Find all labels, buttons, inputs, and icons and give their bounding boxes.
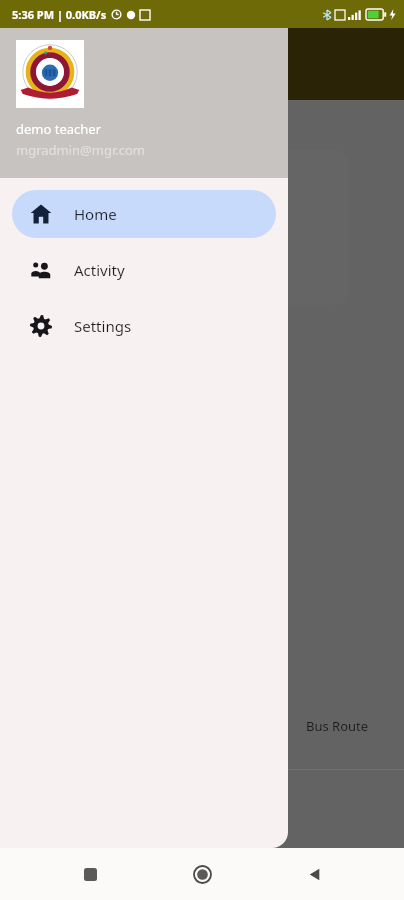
staticText: Settings	[74, 316, 132, 336]
staticText: 5:36 PM | 0.0KB/s	[12, 7, 107, 22]
staticText: Bus Route	[306, 717, 369, 735]
button[interactable]: Settings	[12, 302, 276, 350]
button[interactable]: Activity	[12, 246, 276, 294]
button[interactable]: Recents	[68, 852, 112, 896]
staticText: Activity	[74, 260, 125, 280]
staticText: Home	[74, 204, 117, 224]
button[interactable]: Home	[12, 190, 276, 238]
staticText: demo teacher	[16, 120, 102, 138]
button[interactable]: Back	[292, 852, 336, 896]
button[interactable]: Home	[180, 852, 224, 896]
staticText: mgradmin@mgr.com	[16, 141, 145, 159]
